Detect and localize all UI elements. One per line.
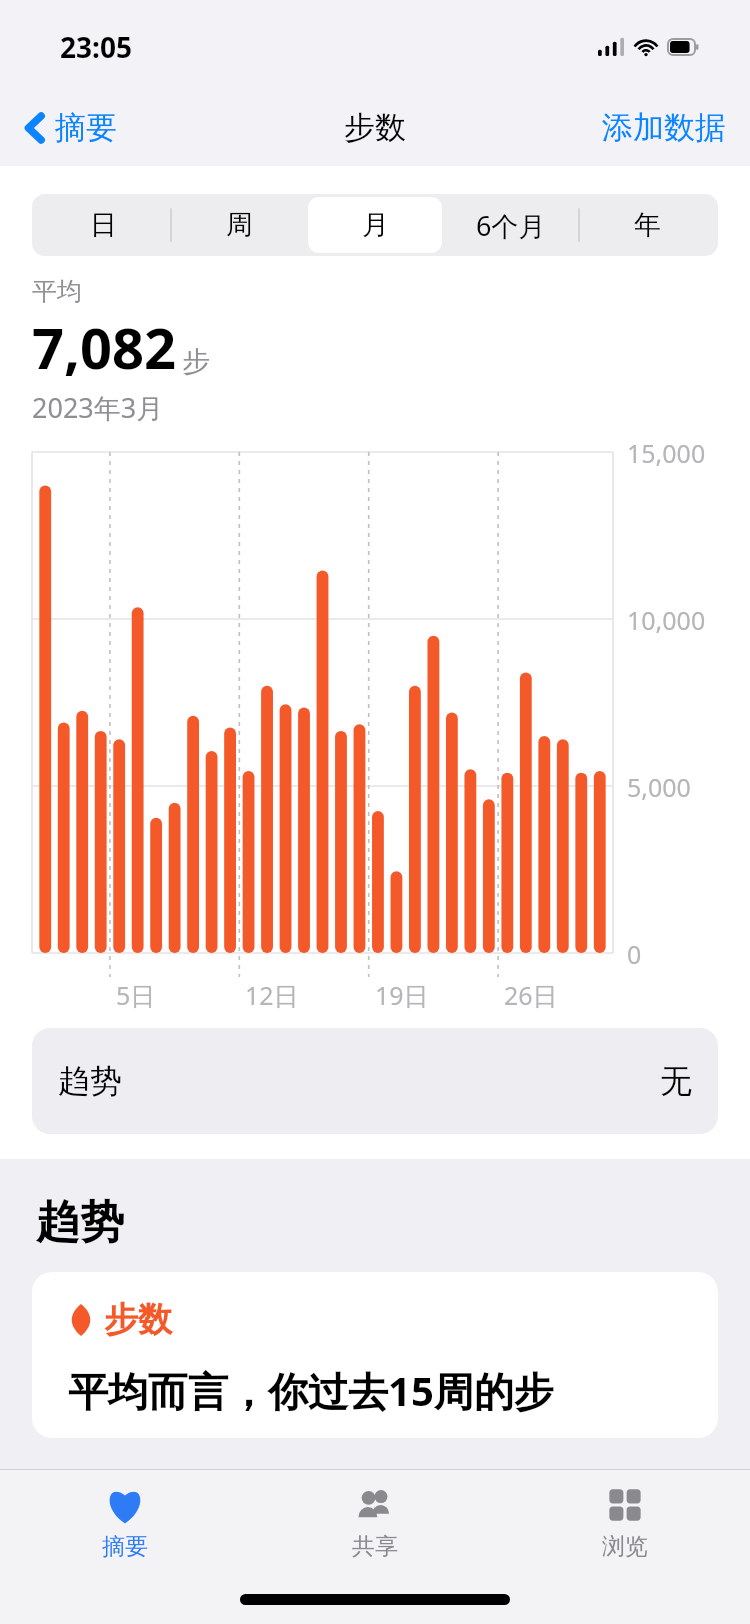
staticText: 19日 [375,978,429,1012]
staticText: 浏览 [602,1532,648,1561]
button[interactable]: 步数 [32,1272,718,1438]
staticText: 添加数据 [602,108,726,147]
staticText: 0 [627,937,642,971]
staticText: 摘要 [102,1532,148,1561]
staticText: 23:05 [60,28,132,66]
staticText: 6个月 [476,207,546,244]
button[interactable]: 周 [172,197,306,253]
staticText: 月 [362,208,389,242]
staticText: 无 [660,1061,692,1101]
staticText: 7,082 [32,309,177,385]
button[interactable]: 摘要 [18,102,123,153]
staticText: 步数 [344,108,406,147]
staticText: 2023年3月 [32,389,164,426]
button[interactable]: 趋势 [32,1028,718,1134]
staticText: 26日 [504,978,558,1012]
staticText: 平均而言，你过去15周的步 [68,1363,554,1418]
button[interactable]: 日 [36,197,170,253]
staticText: 步数 [104,1298,172,1341]
button[interactable]: 浏览 [500,1470,750,1582]
button[interactable]: 6个月 [444,197,578,253]
staticText: 5日 [116,978,156,1012]
staticText: 15,000 [627,436,706,470]
staticText: 周 [226,208,253,242]
button[interactable]: 摘要 [0,1470,250,1582]
button[interactable]: 共享 [250,1470,500,1582]
button[interactable]: 年 [580,197,714,253]
staticText: 5,000 [627,770,691,804]
staticText: 步 [182,344,210,379]
staticText: 趋势 [58,1061,122,1101]
button[interactable]: 添加数据 [598,102,730,153]
staticText: 摘要 [55,108,117,147]
staticText: 12日 [245,978,299,1012]
staticText: 年 [634,208,661,242]
staticText: 10,000 [627,603,706,637]
staticText: 日 [90,208,117,242]
staticText: 平均 [32,276,82,307]
staticText: 共享 [352,1532,398,1561]
staticText: 趋势 [36,1195,124,1250]
button[interactable]: 月 [308,197,442,253]
